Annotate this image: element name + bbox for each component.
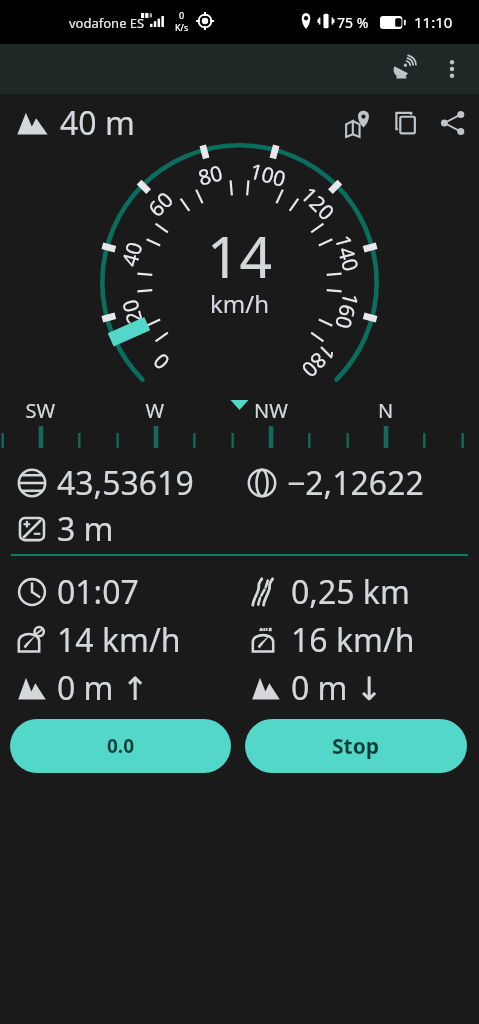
staticText: 0 (179, 9, 185, 21)
staticText: 0 m ↓ (291, 666, 383, 710)
staticText: 3 m (57, 507, 114, 551)
button[interactable]: Satellites (379, 44, 429, 94)
staticText: km/h (210, 287, 270, 320)
staticText: K/s (175, 21, 189, 33)
staticText: Stop (332, 732, 380, 761)
staticText: 14 (207, 217, 273, 295)
staticText: 0,25 km (291, 570, 410, 614)
button[interactable]: Stop (245, 719, 467, 773)
staticText: 01:07 (57, 570, 139, 614)
staticText: 14 km/h (57, 618, 181, 662)
staticText: 16 km/h (291, 618, 415, 662)
button[interactable]: More options (429, 46, 475, 92)
staticText: 43,53619 (57, 461, 194, 505)
button[interactable]: 0.0 (10, 719, 231, 773)
button[interactable]: Share (429, 99, 476, 146)
staticText: 40 m (60, 101, 135, 145)
staticText: 11:10 (414, 12, 453, 32)
staticText: 0 m ↑ (57, 666, 149, 710)
staticText: −2,12622 (287, 461, 424, 505)
button[interactable]: Copy (382, 99, 429, 146)
button[interactable]: Map (335, 99, 382, 146)
staticText: vodafone ES (69, 14, 145, 32)
staticText: 0.0 (107, 733, 135, 759)
staticText: 75 % (337, 13, 369, 32)
